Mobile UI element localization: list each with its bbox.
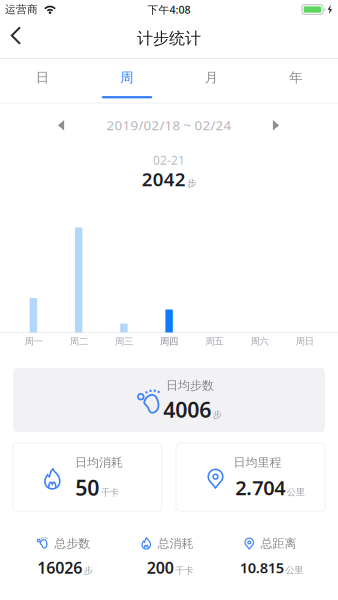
- staticText: 周: [120, 69, 133, 86]
- staticText: 千卡: [175, 565, 193, 576]
- button[interactable]: Back: [0, 21, 34, 51]
- staticText: 总距离: [260, 536, 296, 551]
- staticText: 千卡: [101, 487, 119, 498]
- button[interactable]: Previous week: [50, 114, 72, 136]
- staticText: 年: [289, 69, 302, 86]
- staticText: 步: [84, 565, 93, 576]
- staticText: 公里: [285, 564, 303, 576]
- button[interactable]: 日: [0, 59, 84, 96]
- staticText: 日: [36, 69, 49, 86]
- staticText: 2019/02/18 ~ 02/24: [106, 116, 231, 134]
- staticText: 步: [187, 177, 196, 189]
- button[interactable]: 月: [169, 59, 253, 96]
- staticText: 2042: [142, 167, 186, 191]
- staticText: 计步统计: [137, 29, 201, 48]
- staticText: 10.815: [240, 558, 284, 577]
- staticText: 02-21: [153, 152, 185, 168]
- staticText: 周五: [205, 336, 223, 347]
- staticText: 周二: [70, 336, 88, 347]
- staticText: 公里: [287, 486, 305, 498]
- staticText: 4006: [163, 395, 211, 424]
- staticText: 50: [75, 473, 99, 502]
- staticText: 周六: [251, 336, 269, 347]
- staticText: 16026: [37, 557, 82, 578]
- staticText: 周四: [160, 336, 178, 347]
- staticText: 日均步数: [166, 378, 214, 393]
- staticText: 月: [205, 69, 218, 86]
- button[interactable]: 年: [254, 59, 338, 96]
- staticText: 周一: [24, 336, 42, 347]
- staticText: 周三: [115, 336, 133, 347]
- staticText: 总消耗: [157, 536, 193, 551]
- staticText: 日均里程: [233, 455, 281, 470]
- staticText: 总步数: [54, 536, 90, 551]
- staticText: 日均消耗: [75, 455, 123, 470]
- staticText: 周日: [296, 336, 314, 347]
- staticText: 下午4:08: [147, 2, 190, 17]
- staticText: 运营商: [5, 3, 38, 16]
- staticText: 步: [213, 409, 222, 420]
- button[interactable]: 周: [85, 59, 169, 96]
- staticText: 200: [147, 557, 174, 578]
- staticText: 2.704: [235, 474, 285, 501]
- button[interactable]: Next week: [265, 114, 287, 136]
